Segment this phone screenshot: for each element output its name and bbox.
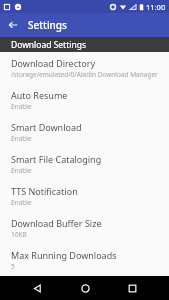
button[interactable]: Download Buffer Size — [0, 212, 169, 244]
staticText: 5 — [11, 262, 15, 271]
staticText: Enable — [11, 134, 32, 143]
staticText: Max Running Downloads — [11, 249, 117, 261]
button[interactable]: Smart Download — [0, 116, 169, 148]
button[interactable]: TTS Notification — [0, 180, 169, 212]
staticText: Smart Download — [11, 121, 82, 133]
staticText: TTS Notification — [11, 185, 78, 197]
staticText: Enable — [11, 102, 32, 111]
staticText: Enable — [11, 198, 32, 207]
button[interactable]: Back — [5, 17, 21, 33]
staticText: Settings — [28, 18, 67, 32]
button[interactable]: Download Directory — [0, 52, 169, 84]
staticText: /storage/emulated/0/Aladin Download Mana… — [11, 70, 158, 79]
staticText: Enable — [11, 166, 32, 175]
button[interactable]: Smart File Cataloging — [0, 148, 169, 180]
button[interactable]: Back — [26, 277, 48, 299]
staticText: 11:00 — [146, 2, 166, 12]
staticText: Smart File Cataloging — [11, 153, 102, 165]
button[interactable]: Home — [74, 277, 96, 299]
staticText: Download Settings — [11, 39, 86, 51]
staticText: 16KB — [11, 230, 27, 239]
button[interactable]: Auto Resume — [0, 84, 169, 116]
button[interactable]: Max Running Downloads — [0, 244, 169, 276]
staticText: Download Buffer Size — [11, 217, 102, 229]
button[interactable]: Recent apps — [121, 277, 143, 299]
staticText: Auto Resume — [11, 89, 68, 101]
staticText: Download Directory — [11, 57, 95, 69]
